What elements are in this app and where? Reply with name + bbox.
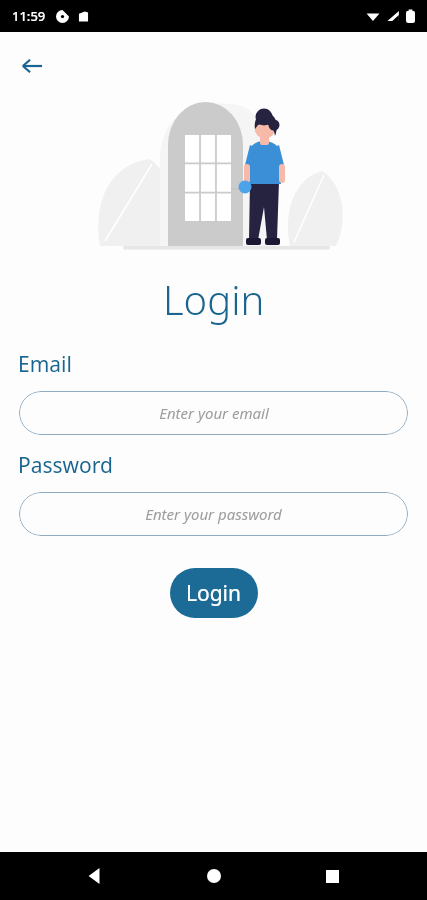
button[interactable]: Enter your password [19,492,408,536]
button[interactable]: Enter your email [19,391,408,435]
staticText: Login [163,272,265,326]
staticText: Email [18,350,72,379]
button[interactable]: Recents [308,852,356,900]
staticText: Password [18,451,113,480]
button[interactable]: Home [190,852,238,900]
button[interactable]: Back [71,852,119,900]
staticText: Enter your email [159,403,269,423]
staticText: 11:59 [12,7,46,25]
button[interactable]: Login [170,568,258,618]
staticText: Enter your password [145,504,282,524]
button[interactable]: Back [12,46,52,86]
staticText: Login [186,579,242,608]
